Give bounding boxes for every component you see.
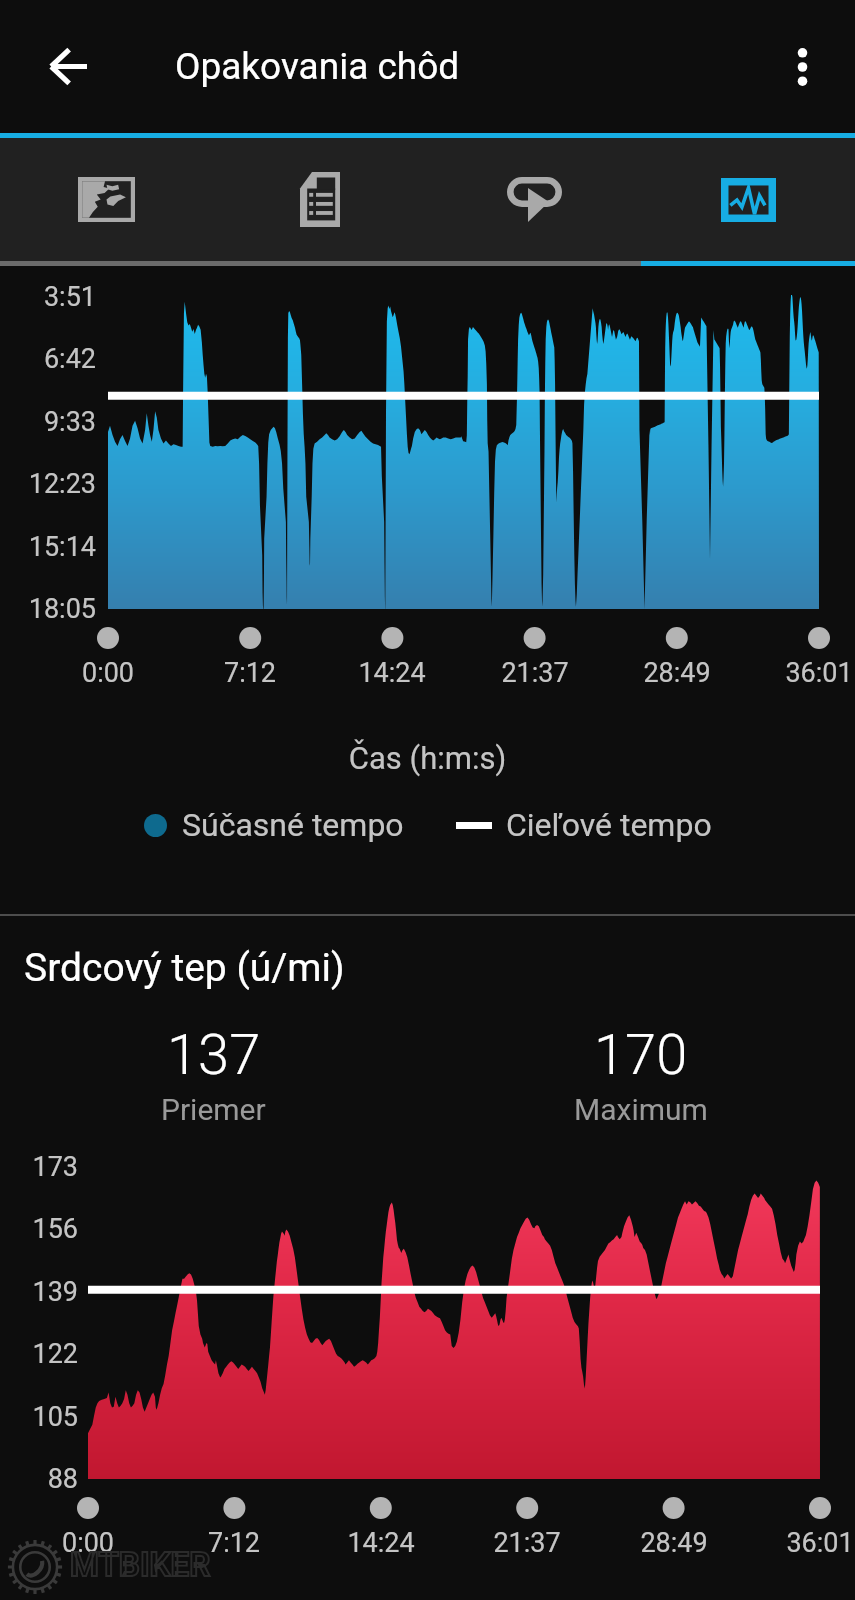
staticText: 28:49	[594, 1527, 754, 1559]
staticText: 36:01	[740, 1527, 855, 1559]
staticText: 18:05	[0, 593, 96, 625]
staticText: 21:37	[447, 1527, 607, 1559]
staticText: Čas (h:m:s)	[0, 740, 855, 776]
staticText: MTBIKER	[70, 1545, 211, 1584]
staticText: 122	[0, 1338, 78, 1370]
button[interactable]: Charts	[641, 138, 855, 261]
staticText: 14:24	[301, 1527, 461, 1559]
staticText: 36:01	[739, 657, 855, 689]
staticText: 0:00	[8, 1527, 168, 1559]
button[interactable]: Details	[213, 138, 427, 261]
staticText: 21:37	[455, 657, 615, 689]
staticText: 9:33	[0, 406, 96, 438]
staticText: 170	[594, 1022, 688, 1088]
staticText: 7:12	[154, 1527, 314, 1559]
staticText: Priemer	[161, 1092, 266, 1127]
staticText: 6:42	[0, 343, 96, 375]
staticText: 105	[0, 1401, 78, 1433]
staticText: Opakovania chôd	[175, 45, 460, 88]
staticText: 3:51	[0, 281, 96, 313]
staticText: 0:00	[28, 657, 188, 689]
staticText: 139	[0, 1276, 78, 1308]
staticText: Srdcový tep (ú/mi)	[24, 945, 345, 991]
staticText: 12:23	[0, 468, 96, 500]
staticText: Maximum	[574, 1092, 708, 1127]
button[interactable]: More options	[750, 0, 855, 133]
staticText: 156	[0, 1213, 78, 1245]
button[interactable]: Back	[0, 0, 135, 133]
button[interactable]: Laps	[427, 138, 641, 261]
staticText: 14:24	[312, 657, 472, 689]
staticText: Cieľové tempo	[506, 806, 712, 844]
staticText: Súčasné tempo	[182, 806, 404, 844]
staticText: 88	[0, 1463, 78, 1495]
button[interactable]: Map	[0, 138, 213, 261]
staticText: 7:12	[170, 657, 330, 689]
staticText: 137	[167, 1022, 261, 1088]
staticText: 173	[0, 1151, 78, 1183]
staticText: 28:49	[597, 657, 757, 689]
staticText: 15:14	[0, 531, 96, 563]
